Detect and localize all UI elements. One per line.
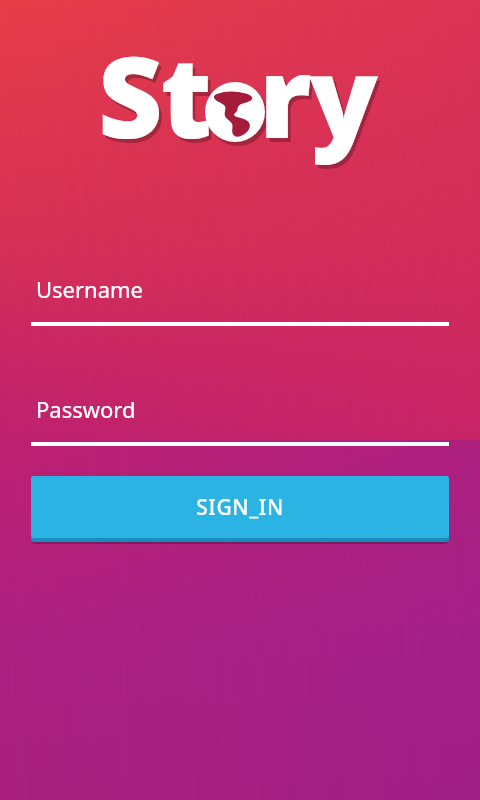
other: Story app logo [112, 55, 368, 147]
button[interactable] [31, 476, 449, 543]
button[interactable] [31, 274, 449, 326]
button[interactable] [31, 394, 449, 446]
